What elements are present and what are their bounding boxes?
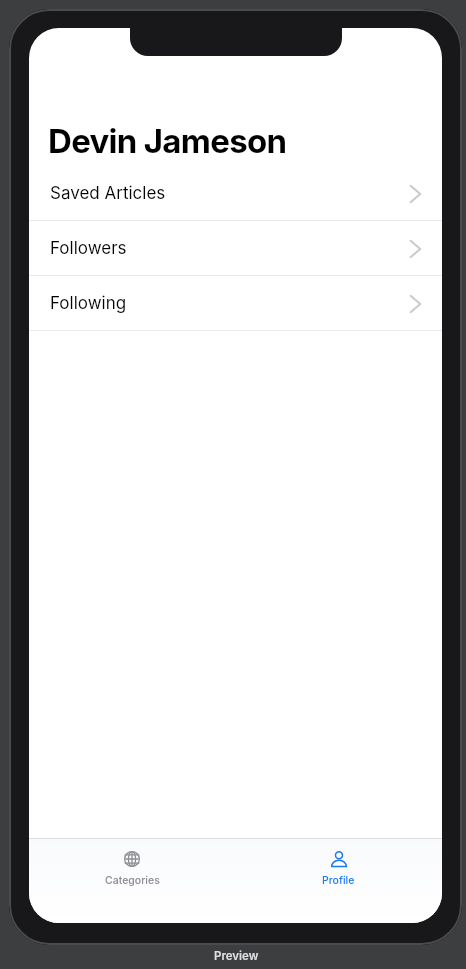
- button[interactable]: Categories: [29, 851, 235, 887]
- button[interactable]: Profile: [235, 851, 442, 887]
- staticText: Followers: [50, 238, 127, 259]
- button[interactable]: Following: [29, 276, 442, 331]
- staticText: Saved Articles: [50, 183, 166, 204]
- staticText: Following: [50, 293, 127, 314]
- staticText: Preview: [214, 949, 259, 963]
- button[interactable]: Saved Articles: [29, 166, 442, 221]
- staticText: Categories: [105, 874, 160, 887]
- button[interactable]: Followers: [29, 221, 442, 276]
- staticText: Profile: [322, 874, 355, 887]
- staticText: Devin Jameson: [48, 121, 287, 161]
